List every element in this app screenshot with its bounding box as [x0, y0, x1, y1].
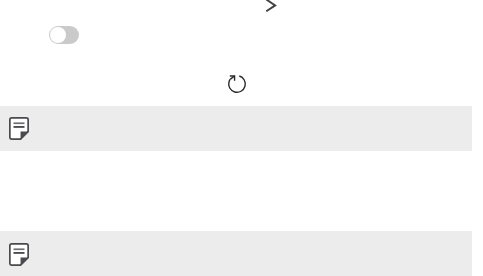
button[interactable]: Note item — [0, 106, 472, 151]
button[interactable]: Toggle setting — [49, 26, 79, 44]
button[interactable]: Open details — [262, 0, 282, 13]
button[interactable]: Note item — [0, 231, 472, 276]
button[interactable]: Refresh — [228, 75, 246, 93]
